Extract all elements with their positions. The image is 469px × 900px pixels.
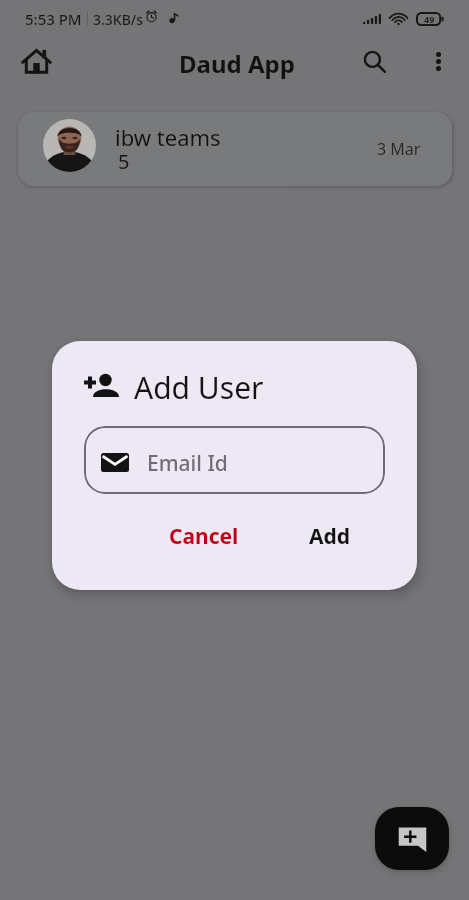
button[interactable]: Email Id bbox=[84, 426, 385, 494]
staticText: Daud App bbox=[179, 47, 295, 80]
staticText: 3 Mar bbox=[377, 138, 421, 160]
button[interactable]: ibw teams bbox=[18, 112, 452, 186]
staticText: ibw teams bbox=[115, 122, 221, 152]
button[interactable]: More options bbox=[414, 37, 462, 85]
staticText: Email Id bbox=[147, 449, 228, 478]
button[interactable]: New chat bbox=[375, 807, 449, 870]
staticText: Cancel bbox=[169, 522, 239, 551]
staticText: 3.3KB/s bbox=[93, 10, 144, 29]
button[interactable]: Search bbox=[350, 37, 398, 85]
staticText: 5:53 PM bbox=[25, 9, 82, 29]
staticText: 49 bbox=[424, 13, 435, 25]
staticText: 5 bbox=[118, 148, 130, 175]
button[interactable]: Add bbox=[299, 514, 361, 559]
button[interactable]: Home bbox=[12, 37, 60, 85]
button[interactable]: Cancel bbox=[159, 514, 249, 559]
staticText: Add bbox=[309, 522, 351, 551]
staticText: Add User bbox=[134, 367, 264, 408]
